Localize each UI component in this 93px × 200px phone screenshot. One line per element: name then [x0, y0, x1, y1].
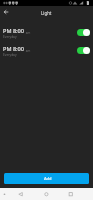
button[interactable]: Back	[0, 6, 12, 18]
staticText: Everyday	[3, 53, 17, 57]
staticText: PM 8:00	[3, 45, 25, 53]
button[interactable]: Toggle alarm	[77, 27, 90, 37]
staticText: Light	[41, 10, 52, 16]
staticText: Everyday	[3, 35, 17, 39]
button[interactable]: Add	[4, 173, 89, 184]
staticText: PM 8:00	[3, 27, 25, 35]
button[interactable]: PM 8:00	[0, 23, 93, 41]
staticText: am	[25, 31, 31, 35]
staticText: Add	[44, 176, 52, 181]
button[interactable]: PM 8:00	[0, 41, 93, 59]
button[interactable]: Toggle alarm	[77, 45, 90, 55]
staticText: am	[25, 49, 31, 53]
